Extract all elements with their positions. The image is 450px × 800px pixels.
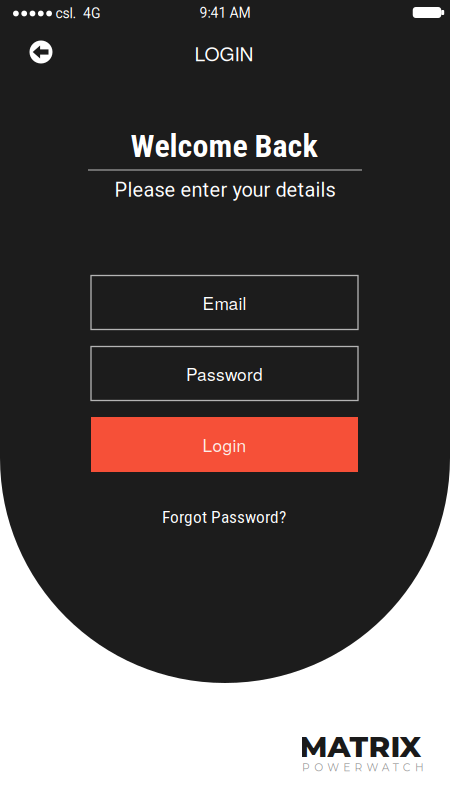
staticText: Email <box>202 290 246 315</box>
staticText: Login <box>202 432 246 457</box>
staticText: Forgot Password? <box>162 507 286 527</box>
staticText: Please enter your details <box>114 178 335 202</box>
button[interactable]: Login <box>91 417 358 472</box>
staticText: 9:41 AM <box>199 5 250 21</box>
staticText: LOGIN <box>194 39 253 67</box>
staticText: 4G <box>83 5 101 22</box>
button[interactable]: Password <box>91 346 358 400</box>
staticText: MATRIX <box>299 729 421 764</box>
button[interactable]: Back <box>29 40 52 63</box>
staticText: Password <box>186 361 263 386</box>
staticText: csl. <box>55 5 76 22</box>
button[interactable]: Email <box>91 275 358 329</box>
button[interactable]: Forgot Password? <box>162 507 286 527</box>
staticText: Welcome Back <box>130 127 317 165</box>
staticText: POWERWATCH <box>302 761 424 774</box>
